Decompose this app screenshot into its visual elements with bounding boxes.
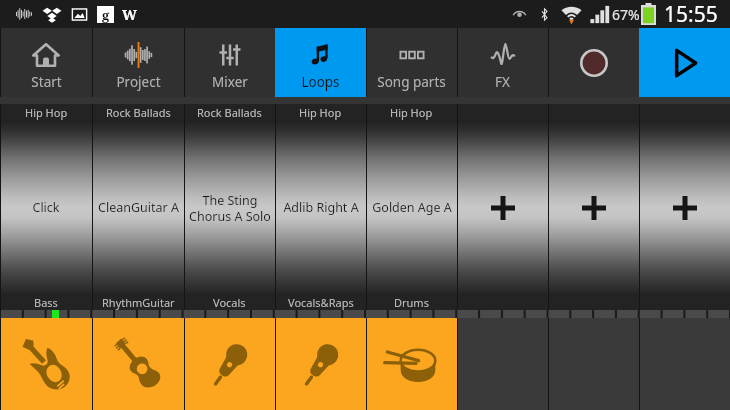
staticText: 67% [612,5,640,24]
staticText: Start [31,73,62,91]
button[interactable] [366,318,457,410]
button[interactable] [0,318,92,410]
staticText: Vocals [213,295,246,310]
staticText: Song parts [377,73,446,91]
button[interactable]: Start [0,28,92,97]
staticText: Mixer [212,73,248,91]
button[interactable]: Play [639,28,730,97]
staticText: Loops [301,73,340,91]
staticText: Hip Hop [25,105,68,120]
staticText: Project [116,73,161,91]
staticText: Click [32,199,60,216]
button[interactable]: Loops [275,28,366,97]
button[interactable] [548,121,639,294]
button[interactable]: Record [548,28,639,97]
staticText: Hip Hop [390,105,433,120]
button[interactable]: FX [457,28,548,97]
button[interactable]: Adlib Right A [275,121,366,294]
button[interactable]: Golden Age A [366,121,457,294]
staticText: RhythmGuitar [102,295,175,310]
button[interactable] [639,121,730,294]
button[interactable] [457,121,548,294]
staticText: Adlib Right A [283,199,359,216]
staticText: Rock Ballads [197,105,262,120]
staticText: The Sting Chorus A Solo [189,192,271,224]
staticText: g [102,6,110,23]
button[interactable] [92,318,184,410]
button[interactable] [275,318,366,410]
staticText: Golden Age A [372,199,452,216]
staticText: FX [495,73,510,91]
button[interactable] [548,318,639,410]
button[interactable]: Song parts [366,28,457,97]
button[interactable] [457,318,548,410]
button[interactable] [184,318,275,410]
staticText: W [122,5,137,24]
button[interactable] [639,318,730,410]
staticText: 15:55 [664,0,718,28]
staticText: CleanGuitar A [98,199,179,216]
button[interactable]: The Sting Chorus A Solo [184,121,275,294]
button[interactable]: Click [0,121,92,294]
staticText: Hip Hop [299,105,342,120]
button[interactable]: Mixer [184,28,275,97]
button[interactable]: CleanGuitar A [92,121,184,294]
staticText: Drums [394,295,429,310]
staticText: Bass [34,295,58,310]
staticText: Rock Ballads [106,105,171,120]
button[interactable]: Project [92,28,184,97]
staticText: Vocals&Raps [288,295,354,310]
